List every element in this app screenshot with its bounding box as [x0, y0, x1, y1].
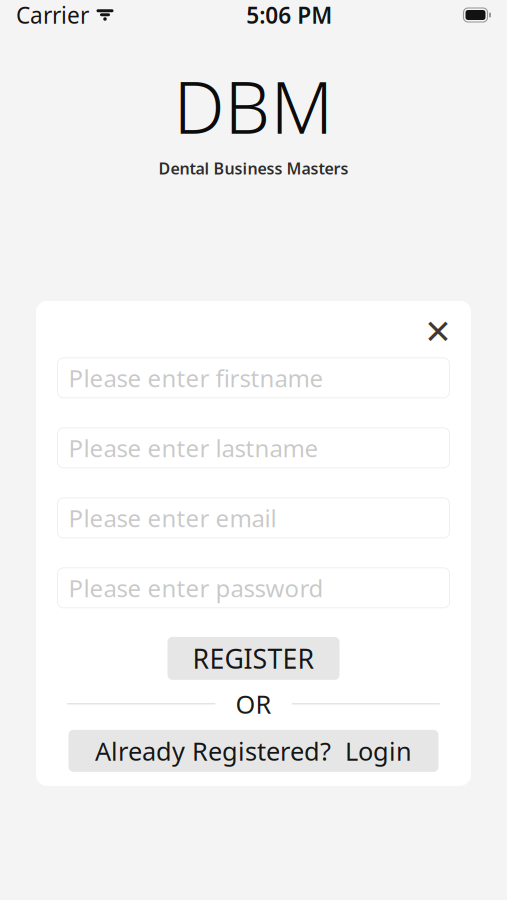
staticText: OR: [235, 687, 271, 721]
staticText: Please enter email: [68, 502, 276, 534]
staticText: Carrier: [16, 0, 89, 30]
button[interactable]: Please enter email: [57, 498, 449, 538]
staticText: ✕: [424, 313, 452, 351]
staticText: Please enter firstname: [68, 362, 323, 394]
button[interactable]: Already Registered? Login: [68, 730, 438, 772]
staticText: Please enter password: [68, 572, 323, 604]
staticText: Already Registered? Login: [95, 734, 412, 768]
button[interactable]: Close: [416, 310, 460, 354]
button[interactable]: Please enter password: [57, 568, 449, 608]
staticText: Dental Business Masters: [158, 158, 348, 179]
button[interactable]: Please enter lastname: [57, 428, 449, 468]
button[interactable]: Please enter firstname: [57, 358, 449, 398]
staticText: REGISTER: [192, 641, 314, 676]
staticText: 5:06 PM: [246, 0, 332, 30]
staticText: Please enter lastname: [68, 432, 318, 464]
button[interactable]: REGISTER: [167, 637, 339, 680]
staticText: DBM: [173, 58, 333, 154]
